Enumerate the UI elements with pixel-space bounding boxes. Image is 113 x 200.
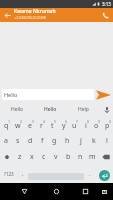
staticText: m: [89, 152, 96, 162]
button[interactable]: 6: [58, 117, 69, 133]
button[interactable]: x: [26, 149, 38, 165]
button[interactable]: ?123: [0, 165, 18, 183]
button[interactable]: Voice input: [100, 102, 113, 117]
staticText: c: [42, 152, 46, 162]
staticText: j: [80, 136, 82, 146]
button[interactable]: Hide keyboard: [96, 183, 112, 200]
button[interactable]: f: [36, 133, 48, 149]
button[interactable]: k: [87, 133, 100, 149]
staticText: o: [94, 121, 99, 131]
button[interactable]: 9: [91, 117, 102, 133]
button[interactable]: b: [62, 149, 74, 165]
staticText: b: [66, 152, 71, 162]
button[interactable]: Back: [0, 8, 14, 22]
button[interactable]: z: [14, 149, 26, 165]
staticText: n: [78, 152, 83, 162]
staticText: k: [92, 136, 96, 146]
staticText: i: [85, 121, 87, 131]
staticText: w: [15, 121, 21, 131]
staticText: a: [4, 136, 8, 146]
staticText: z: [18, 152, 22, 162]
button[interactable]: Call: [97, 8, 113, 22]
staticText: 0: [109, 119, 112, 124]
staticText: q: [4, 121, 9, 131]
staticText: 4: [43, 119, 46, 124]
staticText: 3:13: [102, 1, 111, 7]
staticText: ?123: [4, 171, 14, 177]
staticText: 1: [8, 119, 11, 124]
button[interactable]: 3: [24, 117, 36, 133]
button[interactable]: c: [38, 149, 50, 165]
button[interactable]: Backspace: [98, 149, 113, 165]
button[interactable]: 4: [36, 117, 47, 133]
staticText: 6: [65, 119, 68, 124]
button[interactable]: Back: [14, 183, 34, 200]
staticText: g: [52, 136, 57, 146]
button[interactable]: n: [74, 149, 86, 165]
button[interactable]: 2: [12, 117, 24, 133]
button[interactable]: ,: [18, 165, 28, 183]
staticText: u: [72, 121, 77, 131]
staticText: 7: [76, 119, 79, 124]
staticText: f: [41, 136, 44, 146]
staticText: 3: [32, 119, 35, 124]
button[interactable]: l: [100, 133, 113, 149]
button[interactable]: v: [50, 149, 62, 165]
button[interactable]: 7: [69, 117, 80, 133]
button[interactable]: .: [84, 165, 95, 183]
button[interactable]: Home: [46, 183, 66, 200]
staticText: Help: [78, 106, 89, 113]
button[interactable]: Recent apps: [75, 183, 95, 200]
staticText: .: [89, 170, 91, 178]
staticText: p: [105, 121, 110, 131]
button[interactable]: s: [12, 133, 24, 149]
staticText: t: [51, 121, 54, 131]
staticText: l: [106, 136, 108, 146]
staticText: 2: [20, 119, 23, 124]
button[interactable]: g: [48, 133, 61, 149]
staticText: e: [28, 121, 32, 131]
staticText: 8: [87, 119, 90, 124]
button[interactable]: a: [0, 133, 12, 149]
button[interactable]: 0: [102, 117, 113, 133]
staticText: r: [40, 121, 43, 131]
button[interactable]: Send: [94, 88, 113, 102]
button[interactable]: j: [74, 133, 87, 149]
button[interactable]: 8: [80, 117, 91, 133]
button[interactable]: Shift: [0, 149, 14, 165]
staticText: ,: [22, 170, 24, 178]
button[interactable]: Hello: [34, 102, 67, 117]
staticText: v: [54, 152, 58, 162]
staticText: x: [30, 152, 34, 162]
staticText: d: [28, 136, 33, 146]
button[interactable]: Hello: [2, 89, 94, 100]
button[interactable]: Enter: [95, 165, 113, 183]
staticText: h: [65, 136, 70, 146]
button[interactable]: 1: [0, 117, 12, 133]
staticText: Hello: [11, 106, 24, 113]
button[interactable]: Hello: [0, 102, 34, 117]
staticText: 9: [98, 119, 101, 124]
staticText: Kwame Nkrumah: [14, 8, 56, 15]
staticText: Hello: [4, 91, 18, 98]
button[interactable]: m: [86, 149, 98, 165]
button[interactable]: d: [24, 133, 36, 149]
button[interactable]: Help: [67, 102, 100, 117]
button[interactable]: 5: [47, 117, 58, 133]
button[interactable]: h: [61, 133, 74, 149]
staticText: s: [16, 136, 20, 146]
staticText: y: [62, 121, 66, 131]
staticText: +2348296202088: [14, 15, 47, 20]
staticText: Hello: [44, 106, 57, 113]
staticText: 5: [54, 119, 57, 124]
